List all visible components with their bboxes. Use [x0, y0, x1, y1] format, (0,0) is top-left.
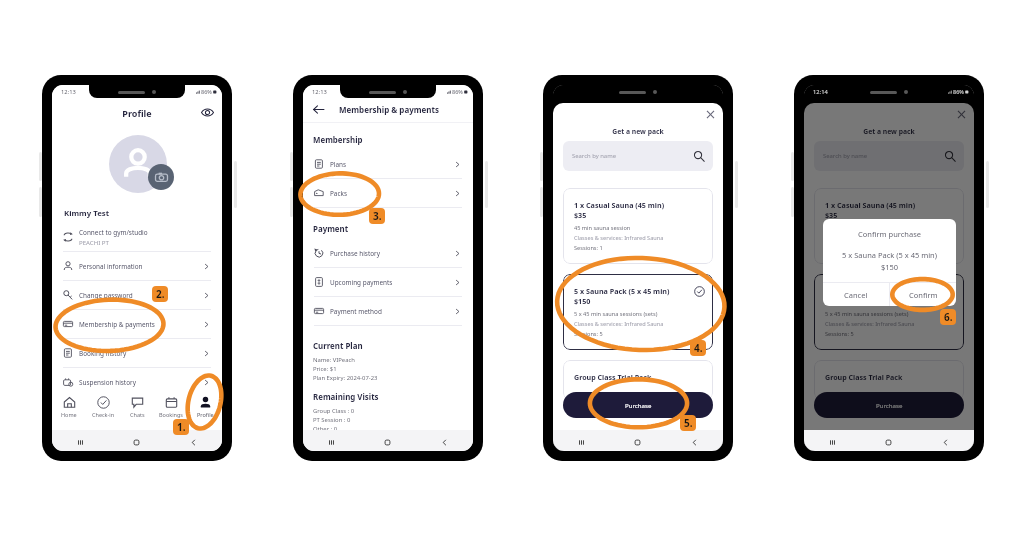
button[interactable]: Plans: [303, 150, 473, 178]
staticText: 1 x Casual Sauna (45 min): [825, 200, 916, 210]
staticText: 4.: [694, 341, 703, 355]
button[interactable]: Packs: [303, 179, 473, 207]
staticText: Plan Expiry: 2024-07-23: [313, 374, 378, 382]
button[interactable]: Connect to gym/studio: [52, 223, 222, 251]
staticText: Payment method: [330, 307, 382, 316]
staticText: Packs: [330, 189, 347, 198]
staticText: Name: VIPeach: [313, 356, 355, 364]
staticText: Plans: [330, 160, 347, 169]
staticText: Change password: [79, 291, 133, 300]
staticText: Group Class Trial Pack: [574, 372, 652, 382]
button[interactable]: Back: [917, 430, 974, 451]
staticText: $150: [574, 296, 591, 306]
button[interactable]: Home: [609, 430, 666, 451]
button[interactable]: 1 x Casual Sauna (45 min): [563, 188, 713, 264]
button[interactable]: Payment method: [303, 297, 473, 325]
staticText: Kimmy Test: [64, 208, 110, 219]
button[interactable]: Recents: [804, 430, 860, 451]
button[interactable]: Group Class Trial Pack: [814, 360, 964, 400]
staticText: Confirm: [909, 290, 938, 300]
staticText: Membership: [313, 135, 363, 146]
staticText: Classes & services: Infrared Sauna: [574, 320, 664, 328]
staticText: 6.: [944, 310, 953, 324]
staticText: 1.: [177, 420, 186, 434]
button[interactable]: Chats: [120, 387, 154, 430]
button[interactable]: Purchase: [814, 392, 964, 418]
button[interactable]: Home: [860, 430, 917, 451]
button[interactable]: Search by name: [563, 141, 713, 171]
staticText: 45 min sauna session: [574, 224, 631, 232]
staticText: Bookings: [159, 411, 184, 418]
staticText: $150: [823, 262, 956, 272]
staticText: Membership & payments: [339, 104, 440, 115]
staticText: 86%: [452, 88, 463, 95]
staticText: Confirm purchase: [823, 229, 956, 239]
staticText: 5 x Sauna Pack (5 x 45 min): [823, 250, 956, 260]
button[interactable]: Personal information: [52, 252, 222, 280]
button[interactable]: Recents: [52, 430, 108, 451]
button[interactable]: Back: [312, 103, 325, 116]
button[interactable]: Suspension history: [52, 368, 222, 396]
button[interactable]: Back: [416, 430, 473, 451]
staticText: Home: [61, 411, 77, 418]
button[interactable]: Change password: [52, 281, 222, 309]
button[interactable]: Change profile photo: [148, 164, 174, 190]
button[interactable]: 5 x Sauna Pack (5 x 45 min): [814, 274, 964, 350]
staticText: $35: [825, 210, 838, 220]
staticText: Group Class : 0: [313, 407, 355, 415]
staticText: Payment: [313, 224, 349, 235]
staticText: Purchase history: [330, 249, 380, 258]
staticText: Upcoming payments: [330, 278, 393, 287]
staticText: 12:14: [813, 88, 828, 96]
button[interactable]: Home: [359, 430, 416, 451]
button[interactable]: Membership & payments: [52, 310, 222, 338]
staticText: Get a new pack: [553, 127, 723, 136]
staticText: 12:13: [61, 88, 76, 96]
button[interactable]: Back: [165, 430, 222, 451]
staticText: Search by name: [572, 152, 693, 160]
staticText: $35: [574, 210, 587, 220]
button[interactable]: Search by name: [814, 141, 964, 171]
staticText: Price: $1: [313, 365, 337, 373]
staticText: Sessions: 5: [825, 330, 854, 338]
button[interactable]: Visibility: [201, 106, 214, 119]
staticText: Purchase: [625, 401, 652, 409]
button[interactable]: Purchase history: [303, 239, 473, 267]
button[interactable]: Check-in: [86, 387, 120, 430]
staticText: Membership & payments: [79, 320, 155, 329]
staticText: Classes & services: Infrared Sauna: [825, 234, 915, 242]
button[interactable]: Home: [52, 387, 86, 430]
staticText: PEACHI PT: [79, 238, 109, 246]
button[interactable]: Recents: [303, 430, 359, 451]
staticText: 3.: [373, 209, 382, 223]
button[interactable]: Purchase: [563, 392, 713, 418]
button[interactable]: Cancel: [823, 283, 889, 306]
staticText: Get a new pack: [804, 127, 974, 136]
button[interactable]: Home: [108, 430, 165, 451]
staticText: Search by name: [823, 152, 944, 160]
staticText: Purchase: [876, 401, 903, 409]
button[interactable]: Bookings: [154, 387, 188, 430]
staticText: 86%: [201, 88, 212, 95]
button[interactable]: Group Class Trial Pack: [563, 360, 713, 400]
button[interactable]: Back: [666, 430, 723, 451]
staticText: Check-in: [92, 411, 115, 418]
button[interactable]: Profile: [188, 387, 222, 430]
staticText: Suspension history: [79, 378, 136, 387]
button[interactable]: Confirm: [890, 283, 956, 306]
button[interactable]: Recents: [553, 430, 609, 451]
button[interactable]: Upcoming payments: [303, 268, 473, 296]
button[interactable]: Close: [956, 109, 967, 120]
staticText: 86%: [953, 88, 964, 95]
staticText: Group Class Trial Pack: [825, 372, 903, 382]
staticText: Classes & services: Infrared Sauna: [574, 234, 664, 242]
button[interactable]: Close: [705, 109, 716, 120]
staticText: Booking history: [79, 349, 127, 358]
staticText: 5 x 45 min sauna sessions (sets): [574, 310, 658, 318]
staticText: PT Session : 0: [313, 416, 351, 424]
button[interactable]: 1 x Casual Sauna (45 min): [814, 188, 964, 264]
staticText: 1 x Casual Sauna (45 min): [574, 200, 665, 210]
button[interactable]: 5 x Sauna Pack (5 x 45 min): [563, 274, 713, 350]
button[interactable]: Booking history: [52, 339, 222, 367]
